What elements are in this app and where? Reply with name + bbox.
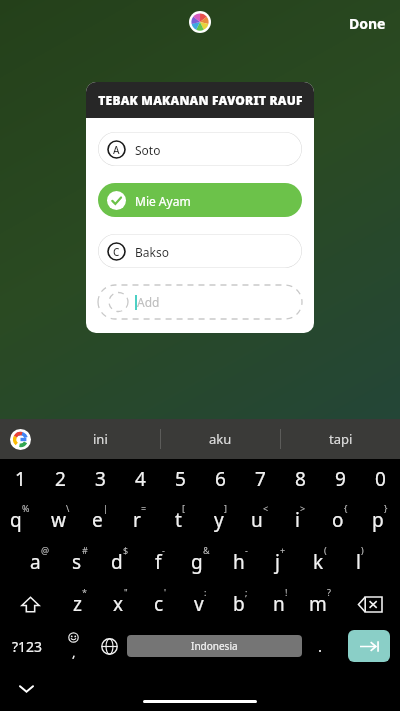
staticText: )	[361, 544, 364, 556]
staticText: 1	[15, 466, 26, 492]
staticText: ?	[327, 586, 331, 598]
button[interactable]: 6	[200, 459, 240, 499]
button[interactable]: x	[100, 583, 140, 625]
button[interactable]: g	[180, 541, 220, 583]
button[interactable]: e	[80, 499, 120, 541]
button[interactable]: a	[20, 541, 60, 583]
staticText: c	[154, 591, 164, 617]
button[interactable]: p	[360, 499, 400, 541]
button[interactable]: ?123	[0, 625, 55, 667]
button[interactable]: Shift	[0, 583, 60, 625]
button[interactable]: 9	[320, 459, 360, 499]
button[interactable]: q	[0, 499, 40, 541]
button[interactable]: v	[180, 583, 220, 625]
button[interactable]: Color picker	[189, 11, 211, 33]
staticText: C	[113, 245, 120, 259]
staticText: \	[66, 502, 70, 514]
staticText: Indonesia	[191, 639, 238, 653]
button[interactable]: h	[220, 541, 260, 583]
staticText: k	[313, 549, 324, 575]
button[interactable]: 3	[80, 459, 120, 499]
button[interactable]: z	[60, 583, 100, 625]
staticText: v	[194, 591, 204, 617]
staticText: }	[384, 502, 388, 514]
button[interactable]: s	[60, 541, 100, 583]
button[interactable]: 7	[240, 459, 280, 499]
button[interactable]: k	[300, 541, 340, 583]
staticText: q	[10, 507, 22, 533]
staticText: Soto	[135, 142, 161, 158]
button[interactable]: t	[160, 499, 200, 541]
button[interactable]: j	[260, 541, 300, 583]
staticText: w	[51, 507, 66, 533]
button[interactable]: w	[40, 499, 80, 541]
button[interactable]: y	[200, 499, 240, 541]
button[interactable]: 5	[160, 459, 200, 499]
staticText: %	[22, 502, 30, 514]
staticText: o	[332, 507, 344, 533]
button[interactable]: d	[100, 541, 140, 583]
button[interactable]: Hide keyboard	[12, 675, 40, 703]
staticText: 5	[175, 466, 186, 492]
staticText: 2	[55, 466, 66, 492]
button[interactable]: Add	[98, 285, 302, 319]
staticText: -	[245, 544, 248, 556]
button[interactable]: Indonesia	[127, 635, 302, 657]
staticText: 8	[295, 466, 306, 492]
staticText: j	[275, 549, 280, 575]
button[interactable]: c	[140, 583, 180, 625]
button[interactable]: 4	[120, 459, 160, 499]
button[interactable]: m	[300, 583, 340, 625]
button[interactable]: u	[240, 499, 280, 541]
button[interactable]: r	[120, 499, 160, 541]
button[interactable]: C	[98, 234, 302, 268]
button[interactable]: Emoji and comma	[55, 625, 91, 667]
staticText: ,	[72, 643, 76, 661]
staticText: e	[92, 507, 103, 533]
staticText: >	[300, 502, 306, 514]
staticText: Done	[349, 14, 386, 33]
button[interactable]: o	[320, 499, 360, 541]
button[interactable]: A	[98, 132, 302, 166]
staticText: <	[263, 502, 269, 514]
staticText: =	[141, 502, 147, 514]
staticText: aku	[209, 430, 232, 448]
button[interactable]: i	[280, 499, 320, 541]
button[interactable]: 1	[0, 459, 40, 499]
staticText: d	[111, 549, 123, 575]
button[interactable]: n	[260, 583, 300, 625]
button[interactable]: .	[302, 625, 338, 667]
button[interactable]: ini	[40, 419, 160, 459]
staticText: {	[344, 502, 348, 514]
button[interactable]: Backspace	[340, 583, 400, 625]
button[interactable]: 0	[360, 459, 400, 499]
button[interactable]: 2	[40, 459, 80, 499]
staticText: A	[113, 143, 120, 157]
button[interactable]: Enter	[348, 630, 390, 662]
staticText: .	[318, 636, 323, 656]
staticText: ]	[224, 502, 227, 514]
staticText: *	[82, 586, 87, 598]
staticText: 9	[335, 466, 346, 492]
staticText: +	[280, 544, 286, 556]
button[interactable]: Google	[0, 419, 40, 459]
staticText: tapi	[329, 430, 353, 448]
staticText: f	[155, 549, 162, 575]
button[interactable]: Done	[349, 14, 386, 33]
staticText: g	[191, 549, 203, 575]
staticText: u	[251, 507, 263, 533]
button[interactable]: tapi	[281, 419, 400, 459]
button[interactable]: Change keyboard language	[91, 625, 127, 667]
button[interactable]: b	[220, 583, 260, 625]
staticText: ?123	[12, 637, 43, 656]
staticText: n	[273, 591, 285, 617]
button[interactable]: f	[140, 541, 180, 583]
staticText: h	[233, 549, 245, 575]
staticText: ;	[245, 586, 248, 598]
button[interactable]: l	[340, 541, 380, 583]
button[interactable]: aku	[161, 419, 280, 459]
button[interactable]: 8	[280, 459, 320, 499]
staticText: z	[73, 591, 82, 617]
button[interactable]: Mie Ayam	[98, 183, 302, 217]
staticText: t	[175, 507, 182, 533]
